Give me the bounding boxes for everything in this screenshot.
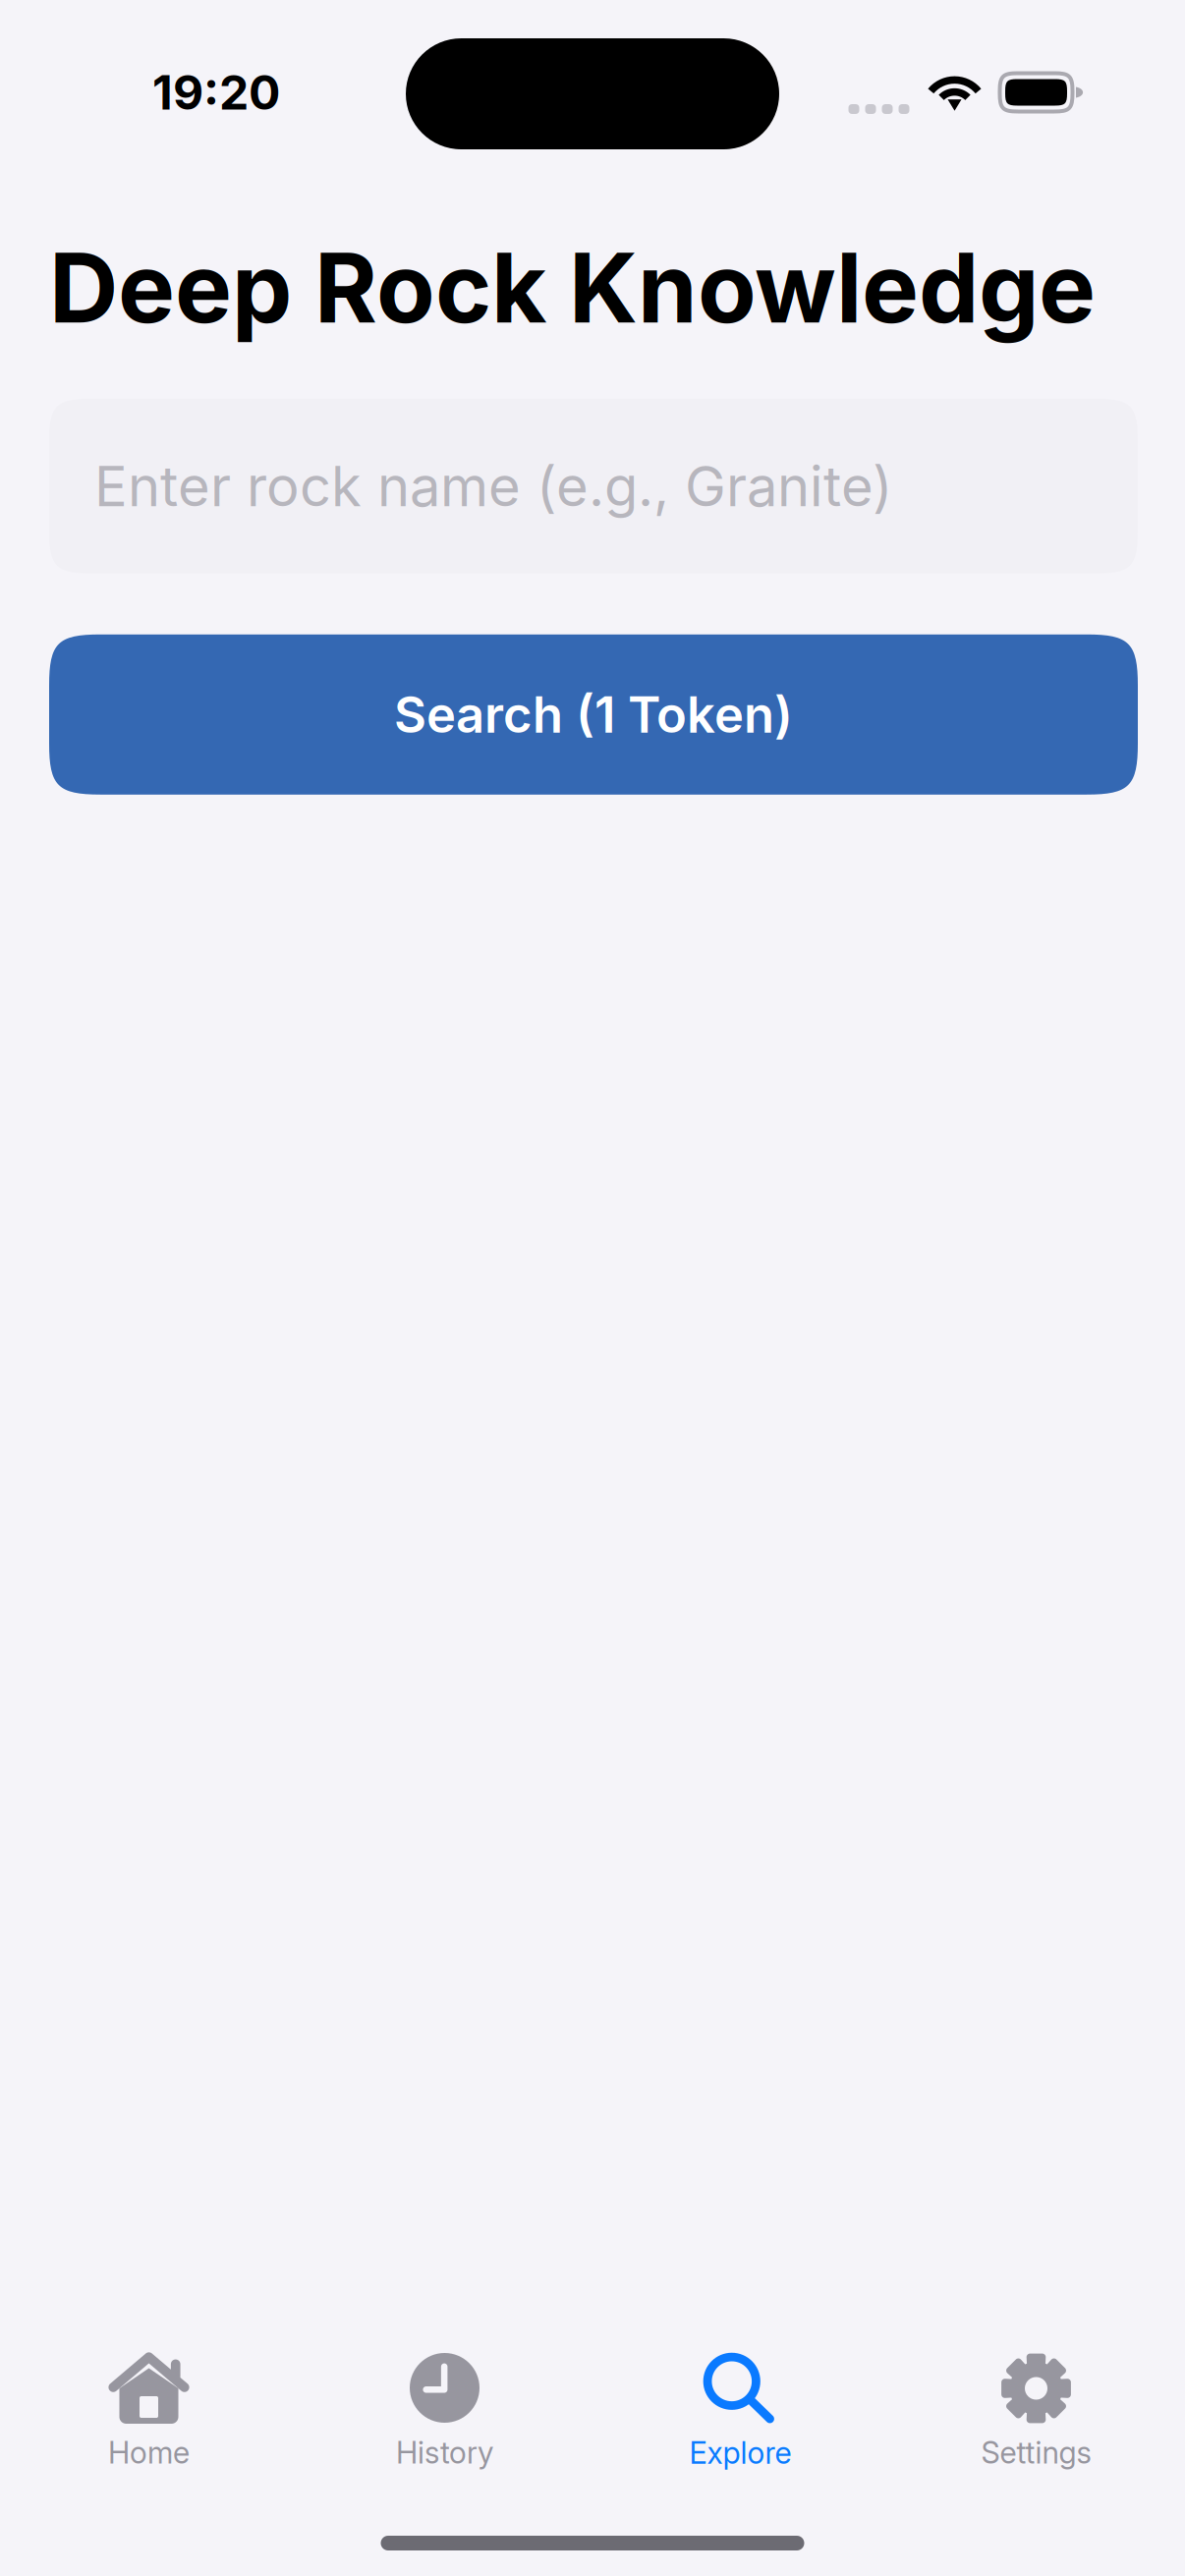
staticText: Settings	[981, 2434, 1091, 2471]
staticText: History	[396, 2434, 493, 2471]
button[interactable]: Settings	[888, 2345, 1184, 2483]
staticText: Home	[108, 2434, 190, 2471]
button[interactable]: Home	[1, 2345, 297, 2483]
staticText: Deep Rock Knowledge	[49, 230, 1096, 346]
button[interactable]: Explore	[592, 2345, 888, 2483]
button[interactable]: Search (1 Token)	[49, 634, 1138, 795]
staticText: 19:20	[152, 64, 280, 121]
staticText: Search (1 Token)	[394, 684, 793, 745]
staticText: Enter rock name (e.g., Granite)	[94, 453, 892, 519]
button[interactable]: History	[297, 2345, 592, 2483]
staticText: Explore	[689, 2434, 791, 2471]
